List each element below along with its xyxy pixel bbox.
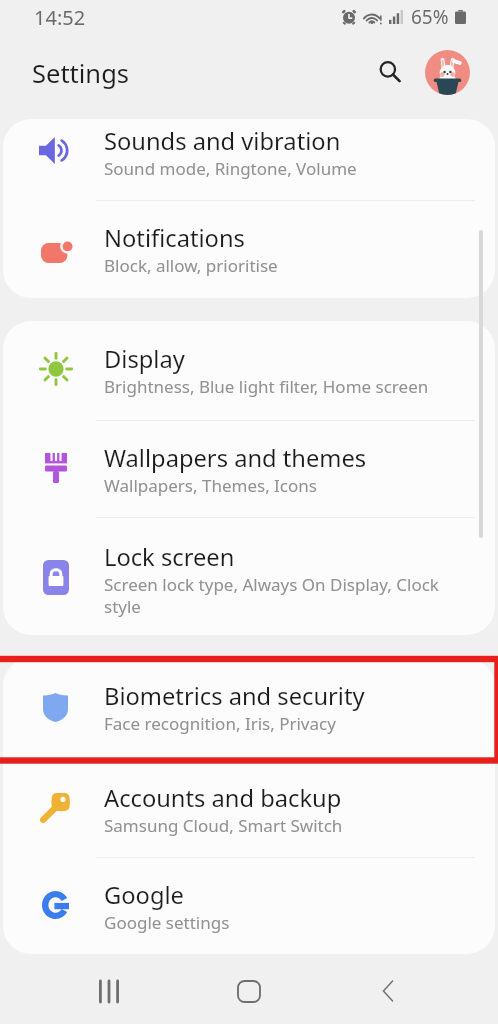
button[interactable]: Home <box>222 964 276 1018</box>
staticText: Block, allow, prioritise <box>104 254 451 277</box>
staticText: Biometrics and security <box>104 680 365 712</box>
staticText: Brightness, Blue light filter, Home scre… <box>104 375 451 398</box>
staticText: Wallpapers, Themes, Icons <box>104 474 451 497</box>
button[interactable]: Back <box>361 964 415 1018</box>
staticText: Accounts and backup <box>104 782 342 814</box>
button[interactable]: Sounds and vibration <box>3 119 495 200</box>
button[interactable]: Google <box>3 857 495 954</box>
staticText: Lock screen <box>104 541 235 573</box>
staticText: Sounds and vibration <box>104 125 341 157</box>
staticText: Screen lock type, Always On Display, Clo… <box>104 573 451 618</box>
staticText: Google settings <box>104 911 451 934</box>
staticText: Settings <box>32 56 130 91</box>
staticText: Sound mode, Ringtone, Volume <box>104 157 451 180</box>
staticText: Notifications <box>104 222 245 254</box>
staticText: Samsung Cloud, Smart Switch <box>104 814 451 837</box>
staticText: Face recognition, Iris, Privacy <box>104 712 451 735</box>
button[interactable]: Wallpapers and themes <box>3 420 495 517</box>
staticText: Display <box>104 343 185 375</box>
staticText: 14:52 <box>34 4 86 31</box>
button[interactable]: Accounts and backup <box>3 760 495 857</box>
button[interactable]: Lock screen <box>3 519 495 616</box>
staticText: Wallpapers and themes <box>104 442 367 474</box>
button[interactable]: Recent apps <box>82 964 136 1018</box>
button[interactable]: Notifications <box>3 200 495 297</box>
staticText: 65% <box>411 4 449 30</box>
button[interactable]: Profile <box>425 50 470 95</box>
button[interactable]: Display <box>3 321 495 418</box>
button[interactable]: Biometrics and security <box>3 658 495 755</box>
button[interactable]: Search <box>367 49 412 94</box>
staticText: Google <box>104 879 184 911</box>
